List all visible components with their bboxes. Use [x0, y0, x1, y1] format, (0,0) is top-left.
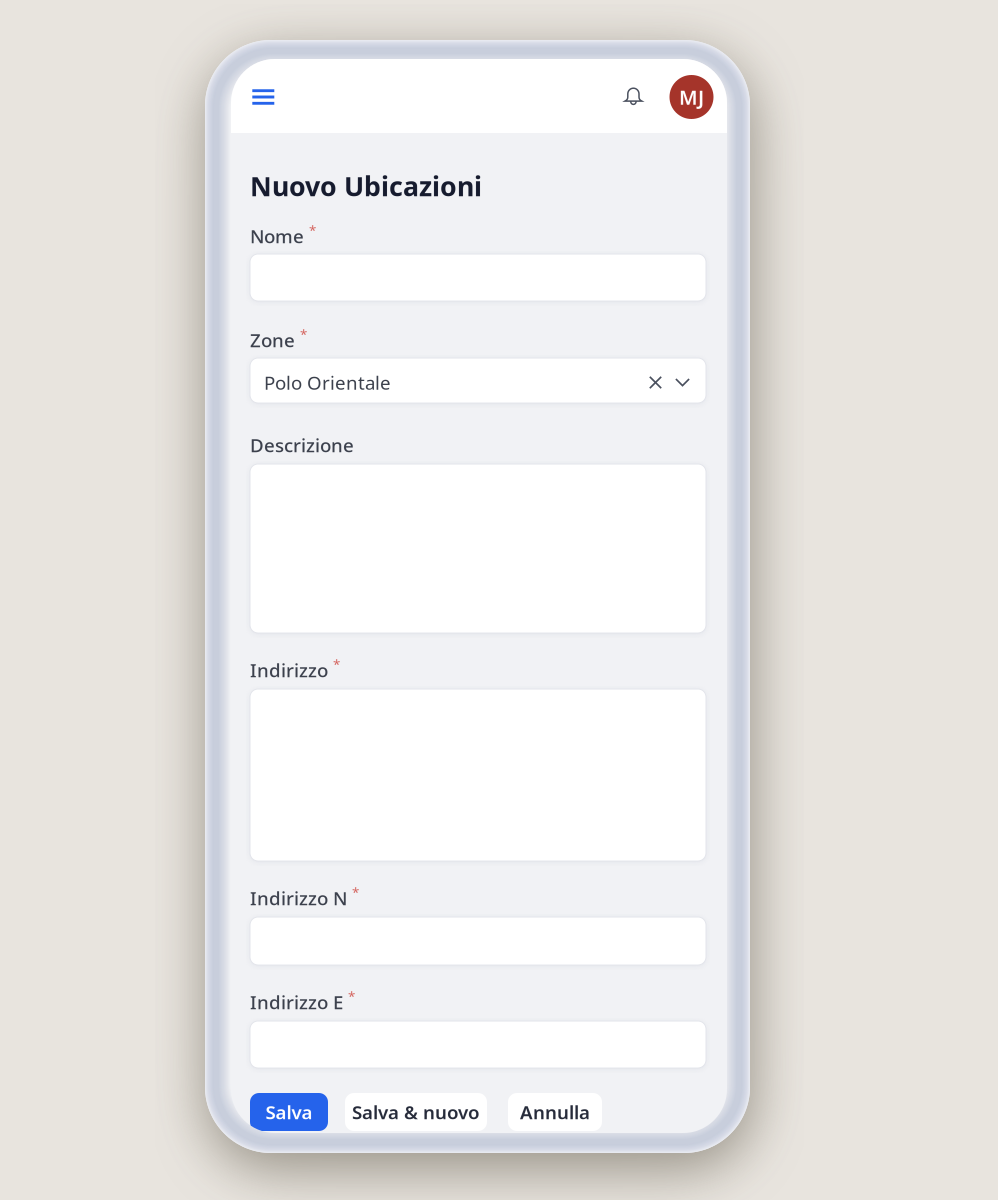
- staticText: Indirizzo: [250, 658, 328, 682]
- staticText: Salva & nuovo: [352, 1100, 480, 1124]
- staticText: Annulla: [520, 1100, 590, 1124]
- staticText: MJ: [679, 84, 704, 110]
- staticText: Indirizzo N: [250, 886, 347, 910]
- staticText: Descrizione: [250, 433, 354, 457]
- staticText: Indirizzo E: [250, 990, 343, 1014]
- staticText: *: [300, 325, 307, 343]
- button[interactable]: Salva & nuovo: [345, 1093, 487, 1131]
- staticText: Nuovo Ubicazioni: [250, 168, 482, 204]
- staticText: Zone: [250, 328, 295, 352]
- button[interactable]: Profile: [669, 75, 713, 119]
- staticText: *: [348, 987, 355, 1005]
- staticText: Salva: [265, 1100, 312, 1124]
- staticText: Polo Orientale: [264, 370, 391, 395]
- staticText: *: [309, 221, 316, 239]
- button[interactable]: Salva: [250, 1093, 328, 1131]
- button[interactable]: Notifications: [613, 76, 653, 116]
- button[interactable]: Annulla: [508, 1093, 602, 1131]
- staticText: Nome: [250, 224, 304, 248]
- staticText: *: [333, 655, 340, 673]
- staticText: *: [352, 883, 359, 901]
- button[interactable]: Menu: [239, 73, 287, 119]
